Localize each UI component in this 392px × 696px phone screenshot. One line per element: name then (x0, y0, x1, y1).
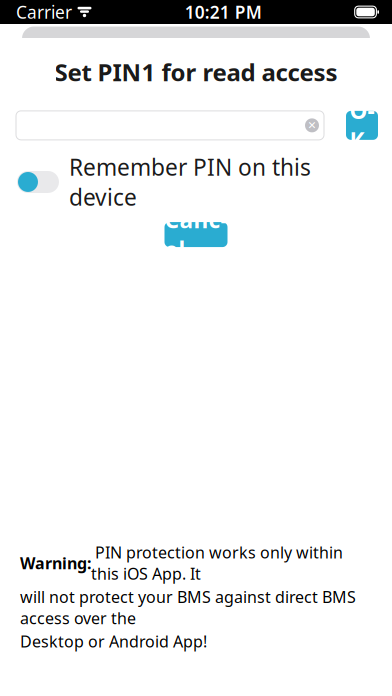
staticText: Warning: (20, 552, 91, 574)
button[interactable]: Cancel (164, 222, 227, 247)
staticText: 10:21 PM (185, 0, 262, 23)
staticText: will not protect your BMS against direct… (20, 586, 356, 629)
button[interactable]: OK (346, 111, 378, 140)
staticText: Carrier (16, 0, 72, 23)
button[interactable]: PIN entry field (16, 111, 324, 140)
staticText: ✕ (307, 119, 316, 131)
staticText: Set PIN1 for read access (54, 56, 337, 88)
staticText: OK (349, 95, 374, 155)
button[interactable]: Remember PIN on this device (17, 171, 59, 193)
staticText: Remember PIN on this device (69, 152, 311, 212)
staticText: Desktop or Android App! (20, 631, 207, 652)
staticText: PIN protection works only within this iO… (91, 542, 343, 584)
staticText: Cancel (164, 204, 227, 265)
